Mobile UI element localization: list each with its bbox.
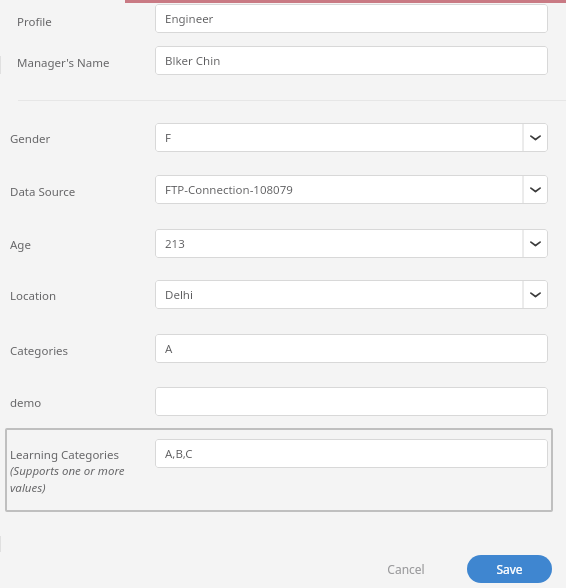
- button[interactable]: Open Location dropdown: [523, 280, 548, 309]
- staticText: FTP-Connection-108079: [165, 182, 293, 198]
- staticText: Age: [10, 237, 31, 253]
- button[interactable]: 213: [155, 229, 548, 258]
- button[interactable]: [155, 387, 548, 416]
- button[interactable]: Engineer: [155, 4, 548, 33]
- staticText: F: [165, 130, 171, 146]
- staticText: Save: [496, 561, 523, 577]
- staticText: Manager's Name: [17, 55, 110, 71]
- staticText: A,B,C: [165, 446, 193, 462]
- staticText: Blker Chin: [165, 53, 221, 69]
- button[interactable]: Blker Chin: [155, 46, 548, 75]
- staticText: Profile: [17, 14, 52, 30]
- button[interactable]: A: [155, 334, 548, 363]
- button[interactable]: Open Data Source dropdown: [523, 175, 548, 204]
- staticText: Gender: [10, 131, 51, 147]
- staticText: Engineer: [165, 11, 214, 27]
- staticText: Data Source: [10, 184, 76, 200]
- staticText: Delhi: [165, 287, 193, 303]
- staticText: (Supports one or more values): [10, 463, 150, 496]
- button[interactable]: Open Gender dropdown: [523, 123, 548, 152]
- button[interactable]: Save: [467, 555, 552, 583]
- staticText: 213: [165, 236, 185, 252]
- button[interactable]: A,B,C: [155, 439, 548, 468]
- button[interactable]: Delhi: [155, 280, 548, 309]
- staticText: Cancel: [387, 561, 425, 577]
- staticText: demo: [10, 395, 42, 411]
- staticText: Learning Categories: [10, 447, 120, 463]
- button[interactable]: F: [155, 123, 548, 152]
- button[interactable]: [5, 428, 553, 512]
- button[interactable]: FTP-Connection-108079: [155, 175, 548, 204]
- staticText: A: [165, 341, 173, 357]
- staticText: Location: [10, 288, 57, 304]
- button[interactable]: Open Age dropdown: [523, 229, 548, 258]
- button[interactable]: Cancel: [381, 558, 431, 580]
- staticText: Categories: [10, 343, 69, 359]
